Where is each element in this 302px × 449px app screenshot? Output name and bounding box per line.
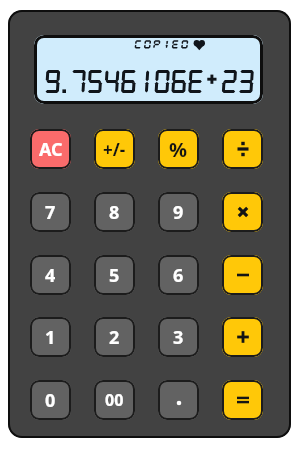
button[interactable]: 8 [94, 192, 135, 232]
button[interactable] [158, 380, 199, 420]
button[interactable]: % [158, 129, 199, 169]
staticText: % [169, 136, 188, 163]
staticText: AC [39, 137, 63, 162]
button[interactable] [222, 380, 263, 420]
button[interactable] [222, 255, 263, 295]
button[interactable]: 4 [30, 255, 71, 295]
button[interactable]: 3 [158, 317, 199, 357]
staticText: 0 [45, 388, 56, 413]
staticText: 8 [109, 200, 120, 225]
button[interactable]: 6 [158, 255, 199, 295]
button[interactable] [222, 192, 263, 232]
button[interactable]: 5 [94, 255, 135, 295]
staticText: 6 [173, 263, 184, 288]
button[interactable] [34, 35, 263, 104]
staticText: 00 [105, 389, 124, 411]
button[interactable]: 0 [30, 380, 71, 420]
button[interactable]: 1 [30, 317, 71, 357]
staticText: 3 [173, 325, 184, 350]
staticText: 5 [109, 263, 120, 288]
staticText: 7 [45, 200, 56, 225]
staticText: 9 [173, 200, 184, 225]
staticText: +/- [103, 138, 126, 161]
button[interactable]: 2 [94, 317, 135, 357]
staticText: 1 [45, 325, 56, 350]
button[interactable] [222, 317, 263, 357]
button[interactable]: +/- [94, 129, 135, 169]
staticText: 4 [45, 263, 56, 288]
button[interactable]: 00 [94, 380, 135, 420]
button[interactable]: 7 [30, 192, 71, 232]
staticText: 2 [109, 325, 120, 350]
button[interactable] [222, 129, 263, 169]
button[interactable]: AC [30, 129, 71, 169]
button[interactable]: 9 [158, 192, 199, 232]
